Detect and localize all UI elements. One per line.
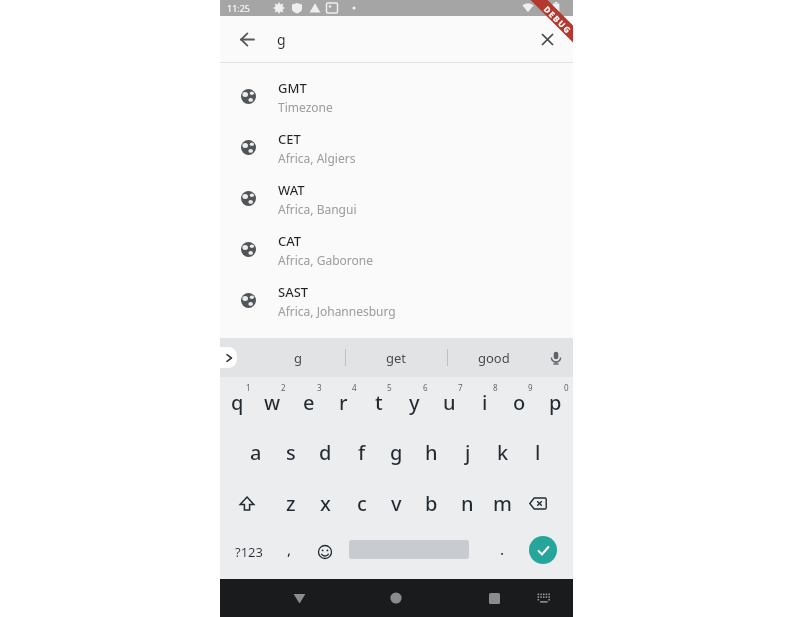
- staticText: Africa, Algiers: [278, 150, 356, 166]
- button[interactable]: CET: [220, 122, 573, 173]
- staticText: y: [409, 389, 420, 416]
- button[interactable]: [477, 582, 511, 614]
- staticText: x: [320, 490, 331, 517]
- staticText: ,: [287, 539, 292, 559]
- button[interactable]: [528, 583, 560, 613]
- button[interactable]: .: [484, 524, 520, 574]
- staticText: l: [535, 439, 541, 466]
- staticText: t: [375, 389, 383, 416]
- staticText: w: [264, 389, 281, 416]
- button[interactable]: d: [308, 427, 343, 478]
- staticText: GMT: [278, 79, 307, 97]
- button[interactable]: e: [291, 377, 326, 427]
- button[interactable]: good: [454, 338, 534, 377]
- button[interactable]: b: [414, 478, 449, 529]
- button[interactable]: k: [485, 427, 520, 478]
- staticText: Africa, Gaborone: [278, 252, 373, 268]
- staticText: b: [425, 490, 438, 517]
- button[interactable]: [529, 536, 557, 564]
- staticText: r: [339, 389, 348, 416]
- staticText: o: [513, 389, 526, 416]
- staticText: j: [465, 439, 471, 466]
- button[interactable]: [533, 25, 561, 53]
- button[interactable]: SAST: [220, 275, 573, 326]
- staticText: s: [286, 439, 296, 466]
- staticText: g: [390, 439, 403, 466]
- staticText: m: [493, 490, 512, 517]
- button[interactable]: j: [450, 427, 485, 478]
- staticText: u: [443, 389, 456, 416]
- staticText: WAT: [278, 181, 305, 199]
- staticText: 1: [246, 382, 251, 393]
- button[interactable]: [520, 478, 556, 529]
- button[interactable]: ?123: [229, 529, 269, 574]
- button[interactable]: x: [308, 478, 343, 529]
- staticText: z: [286, 490, 296, 517]
- button[interactable]: [542, 344, 570, 372]
- button[interactable]: GMT: [220, 71, 573, 122]
- button[interactable]: l: [520, 427, 555, 478]
- staticText: CET: [278, 130, 301, 148]
- staticText: CAT: [278, 232, 302, 250]
- staticText: Africa, Bangui: [278, 201, 357, 217]
- button[interactable]: a: [238, 427, 273, 478]
- staticText: v: [391, 490, 402, 517]
- staticText: 11:25: [227, 2, 251, 14]
- staticText: 4: [352, 382, 357, 393]
- staticText: 3: [317, 382, 322, 393]
- button[interactable]: q: [220, 377, 255, 427]
- staticText: 5: [387, 382, 392, 393]
- staticText: .: [500, 539, 505, 559]
- button[interactable]: CAT: [220, 224, 573, 275]
- staticText: h: [425, 439, 438, 466]
- staticText: 2: [281, 382, 286, 393]
- button[interactable]: z: [273, 478, 308, 529]
- staticText: 7: [458, 382, 463, 393]
- button[interactable]: [379, 582, 413, 614]
- button[interactable]: [220, 347, 237, 368]
- staticText: e: [303, 389, 315, 416]
- button[interactable]: [282, 582, 316, 614]
- staticText: SAST: [278, 283, 309, 301]
- button[interactable]: m: [485, 478, 520, 529]
- button[interactable]: get: [356, 338, 436, 377]
- staticText: 9: [528, 382, 533, 393]
- staticText: q: [231, 389, 244, 416]
- button[interactable]: p: [538, 377, 573, 427]
- button[interactable]: v: [379, 478, 414, 529]
- button[interactable]: g: [379, 427, 414, 478]
- button[interactable]: w: [255, 377, 290, 427]
- button[interactable]: h: [414, 427, 449, 478]
- button[interactable]: [229, 478, 265, 529]
- button[interactable]: y: [397, 377, 432, 427]
- button[interactable]: f: [344, 427, 379, 478]
- staticText: c: [357, 490, 367, 517]
- staticText: get: [386, 349, 407, 367]
- button[interactable]: s: [273, 427, 308, 478]
- button[interactable]: n: [450, 478, 485, 529]
- button[interactable]: c: [344, 478, 379, 529]
- button[interactable]: [233, 25, 261, 53]
- button[interactable]: i: [467, 377, 502, 427]
- staticText: n: [461, 490, 474, 517]
- staticText: 0: [564, 382, 569, 393]
- button[interactable]: o: [502, 377, 537, 427]
- button[interactable]: ,: [271, 524, 307, 574]
- button[interactable]: [308, 529, 342, 574]
- staticText: g: [294, 349, 302, 367]
- staticText: 6: [423, 382, 428, 393]
- staticText: g: [277, 30, 286, 49]
- button[interactable]: t: [361, 377, 396, 427]
- button[interactable]: u: [432, 377, 467, 427]
- button[interactable]: WAT: [220, 173, 573, 224]
- button[interactable]: r: [326, 377, 361, 427]
- button[interactable]: g: [258, 338, 338, 377]
- staticText: Africa, Johannesburg: [278, 303, 396, 319]
- staticText: good: [478, 349, 510, 367]
- staticText: DEBUG: [542, 3, 573, 36]
- staticText: Timezone: [278, 99, 333, 115]
- staticText: p: [549, 389, 562, 416]
- staticText: d: [319, 439, 332, 466]
- staticText: ?123: [235, 543, 263, 561]
